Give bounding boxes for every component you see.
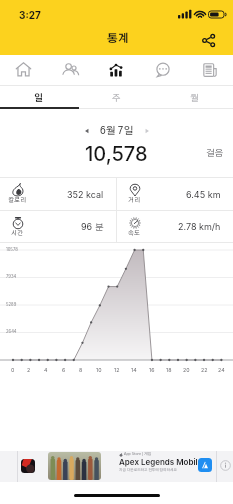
button[interactable]: 속도 xyxy=(117,211,233,242)
staticText: 24 xyxy=(218,367,225,373)
staticText: 3:27 xyxy=(19,9,41,21)
staticText: 16 xyxy=(149,367,155,373)
staticText: 20 xyxy=(183,367,190,373)
staticText: 12 xyxy=(114,367,120,373)
button[interactable]: 일 xyxy=(0,88,77,108)
staticText: 2644 xyxy=(6,329,17,334)
staticText: 4 xyxy=(44,367,48,373)
button[interactable]: Ad info xyxy=(220,460,231,471)
button[interactable]: News xyxy=(186,55,233,84)
staticText: 걸음 xyxy=(206,149,224,158)
staticText: 2 xyxy=(27,367,31,373)
staticText: 6.45 km xyxy=(186,189,221,200)
button[interactable]: 월 xyxy=(155,88,233,108)
staticText: 속도 xyxy=(128,230,141,236)
staticText: 22 xyxy=(201,367,208,373)
staticText: 5289 xyxy=(6,302,17,307)
button[interactable]: Open App Store xyxy=(198,458,212,472)
staticText: Apex Legends Mobile xyxy=(119,457,203,467)
button[interactable]: 거리 xyxy=(117,178,233,210)
button[interactable]: 칼로리 xyxy=(0,178,116,210)
staticText: 거리 xyxy=(128,197,141,203)
button[interactable]: Statistics xyxy=(92,55,139,84)
button[interactable]: Share xyxy=(197,29,219,51)
staticText: 7934 xyxy=(6,274,17,279)
staticText: 14 xyxy=(131,367,137,373)
staticText: 8 xyxy=(79,367,83,373)
staticText: 주 xyxy=(112,94,121,103)
button[interactable]: App Store | 게임 xyxy=(0,451,233,482)
staticText: 10578 xyxy=(6,247,18,252)
button[interactable]: Next day xyxy=(139,123,155,139)
button[interactable]: Friends xyxy=(46,55,92,84)
staticText: 지금 다운로드하고 전투에 참여하세요 xyxy=(119,468,177,472)
staticText: 6 xyxy=(62,367,66,373)
button[interactable]: Home xyxy=(0,55,46,84)
button[interactable]: 시간 xyxy=(0,211,116,242)
staticText: 352 kcal xyxy=(67,189,104,200)
staticText: 96 분 xyxy=(81,221,104,232)
staticText: App Store | 게임 xyxy=(124,452,152,456)
staticText: 18 xyxy=(166,367,172,373)
staticText: 시간 xyxy=(11,230,24,236)
staticText: 2.78 km/h xyxy=(178,221,221,232)
button[interactable]: 주 xyxy=(77,88,155,108)
staticText: 10 xyxy=(96,367,102,373)
staticText: 칼로리 xyxy=(8,197,27,203)
staticText: 10,578 xyxy=(85,142,148,166)
staticText: 월 xyxy=(190,94,199,103)
staticText: 6월 7일 xyxy=(100,126,134,136)
staticText: 통계 xyxy=(107,33,129,44)
staticText: 0 xyxy=(11,367,15,373)
button[interactable]: Chat xyxy=(139,55,186,84)
button[interactable]: Previous day xyxy=(79,123,95,139)
staticText: 일 xyxy=(34,94,43,103)
